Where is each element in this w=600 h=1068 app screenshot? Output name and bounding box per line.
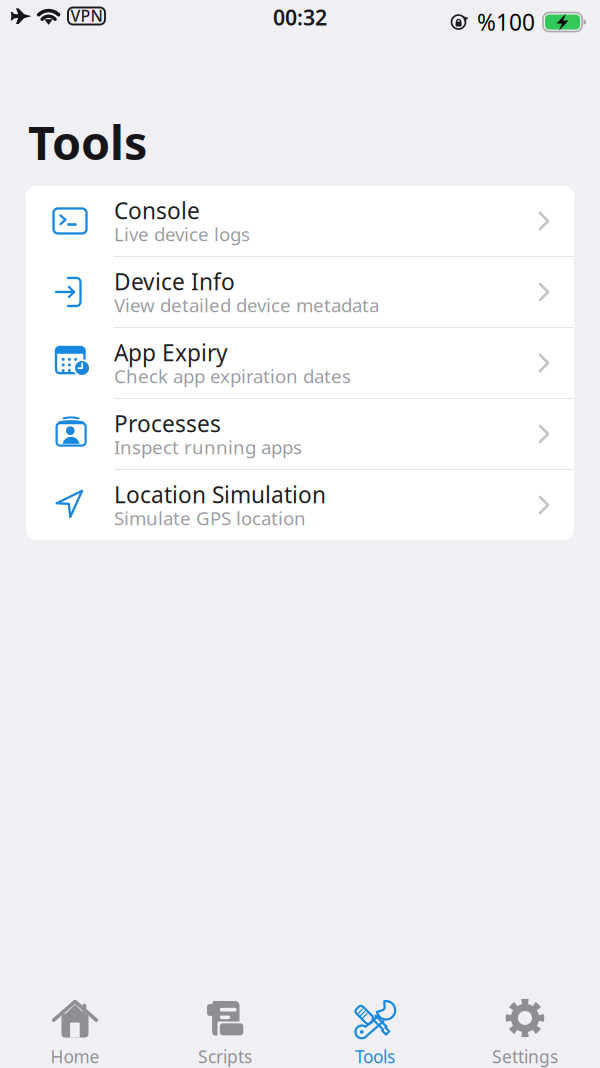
- staticText: Settings: [492, 1045, 558, 1068]
- staticText: App Expiry: [114, 337, 228, 368]
- staticText: VPN: [70, 5, 102, 26]
- button[interactable]: Location Simulation: [26, 470, 574, 540]
- staticText: %100: [477, 7, 535, 37]
- staticText: Simulate GPS location: [114, 506, 306, 530]
- staticText: Tools: [355, 1045, 395, 1068]
- staticText: Inspect running apps: [114, 435, 302, 459]
- staticText: Scripts: [198, 1045, 252, 1068]
- staticText: Home: [50, 1045, 99, 1068]
- staticText: Processes: [114, 408, 221, 439]
- staticText: Device Info: [114, 266, 235, 297]
- staticText: Check app expiration dates: [114, 364, 351, 388]
- staticText: Console: [114, 195, 200, 226]
- button[interactable]: App Expiry: [26, 328, 574, 399]
- button[interactable]: Settings: [450, 978, 600, 1067]
- staticText: 00:32: [273, 3, 327, 31]
- staticText: View detailed device metadata: [114, 293, 379, 317]
- button[interactable]: Home: [0, 978, 150, 1067]
- staticText: Location Simulation: [114, 479, 326, 510]
- button[interactable]: Console: [26, 186, 574, 257]
- staticText: Tools: [28, 111, 147, 173]
- button[interactable]: Tools: [300, 978, 450, 1067]
- button[interactable]: Scripts: [150, 978, 300, 1067]
- staticText: Live device logs: [114, 222, 250, 246]
- button[interactable]: Device Info: [26, 257, 574, 328]
- button[interactable]: Processes: [26, 399, 574, 470]
